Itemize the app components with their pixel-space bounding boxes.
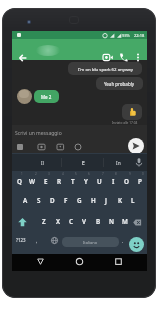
staticText: X [56, 217, 61, 226]
staticText: , [36, 238, 38, 245]
staticText: Yeah probably [104, 81, 135, 87]
staticText: 2 [35, 172, 37, 176]
staticText: Italiano [83, 240, 98, 245]
staticText: 6 [88, 172, 90, 176]
staticText: C [69, 217, 74, 226]
staticText: Me 2 [41, 94, 52, 100]
button[interactable] [18, 218, 27, 227]
staticText: 0 [142, 172, 144, 176]
button[interactable] [76, 258, 83, 265]
staticText: W [29, 177, 36, 186]
staticText: Q [17, 177, 22, 186]
staticText: I [112, 177, 115, 186]
staticText: U [97, 177, 102, 186]
staticText: 22:18 [134, 33, 145, 38]
button[interactable] [128, 138, 144, 154]
staticText: Inviato alle 17:04 [112, 121, 138, 125]
button[interactable] [103, 54, 113, 61]
staticText: D [50, 196, 55, 205]
staticText: In [116, 160, 121, 167]
button[interactable] [129, 237, 144, 252]
staticText: S [37, 196, 41, 205]
staticText: Il [41, 160, 44, 167]
staticText: J [105, 196, 107, 205]
staticText: I'm on blu spark 62 anyway [78, 66, 133, 72]
staticText: E [82, 160, 85, 167]
staticText: H [91, 196, 96, 205]
staticText: Y [84, 177, 88, 186]
staticText: L [131, 196, 135, 205]
staticText: 4 [62, 172, 64, 176]
staticText: G [77, 196, 82, 205]
staticText: E [44, 177, 48, 186]
button[interactable] [115, 258, 122, 265]
button[interactable] [51, 237, 58, 244]
button[interactable]: Italiano [62, 237, 119, 247]
staticText: 9 [129, 172, 131, 176]
staticText: F [64, 196, 68, 205]
button[interactable] [136, 53, 140, 62]
staticText: M [122, 217, 128, 226]
staticText: 1 [21, 172, 23, 176]
staticText: T [71, 177, 75, 186]
staticText: B [96, 217, 101, 226]
staticText: Z [42, 217, 46, 226]
staticText: V [82, 217, 86, 226]
button[interactable] [119, 53, 128, 62]
staticText: ?123 [16, 237, 26, 243]
staticText: P [138, 177, 142, 186]
staticText: 8 [115, 172, 117, 176]
staticText: K [118, 196, 123, 205]
button[interactable] [135, 158, 143, 168]
staticText: O [124, 177, 129, 186]
button[interactable] [133, 219, 142, 226]
staticText: A [23, 196, 28, 205]
staticText: R [57, 177, 62, 186]
staticText: 93% [122, 33, 130, 38]
staticText: 5 [75, 172, 77, 176]
staticText: . [122, 238, 124, 245]
button[interactable] [37, 258, 44, 265]
staticText: Scrivi un messaggio [15, 130, 62, 137]
staticText: 3 [48, 172, 50, 176]
button[interactable] [19, 54, 27, 62]
staticText: 7 [102, 172, 104, 176]
staticText: N [109, 217, 114, 226]
